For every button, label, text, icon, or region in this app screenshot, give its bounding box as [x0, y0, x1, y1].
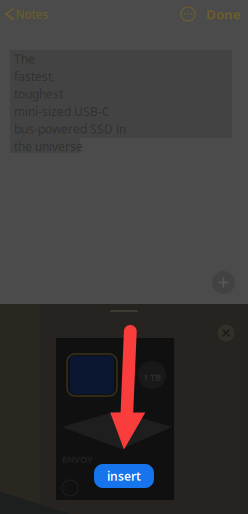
staticText: ENVOY [62, 453, 93, 465]
staticText: bus-powered SSD in [14, 121, 126, 137]
button[interactable]: insert [94, 464, 154, 488]
button[interactable]: Done [199, 0, 248, 29]
staticText: 1 TB [143, 371, 161, 383]
button[interactable]: Add attachment [208, 267, 239, 298]
staticText: mini-sized USB-C [14, 103, 110, 119]
staticText: toughest [14, 86, 63, 102]
button[interactable]: More options [177, 3, 199, 25]
staticText: Done [206, 5, 241, 23]
button[interactable]: Notes [0, 0, 48, 29]
staticText: the universe [14, 138, 83, 154]
staticText: insert [107, 468, 141, 484]
staticText: Notes [15, 6, 48, 22]
staticText: The [14, 51, 35, 67]
button[interactable]: Close [212, 319, 240, 347]
staticText: fastest, [14, 68, 55, 84]
